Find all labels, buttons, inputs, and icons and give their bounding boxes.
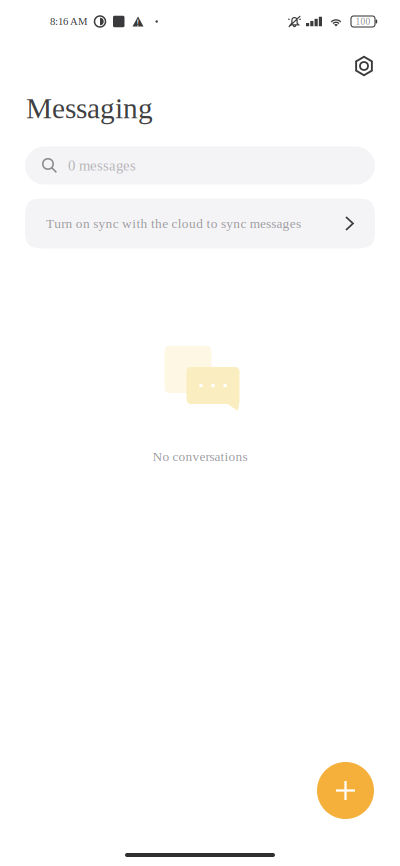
staticText: Turn on sync with the cloud to sync mess… — [46, 216, 301, 231]
staticText: No conversations — [152, 449, 247, 464]
staticText: 100 — [355, 16, 370, 27]
staticText: 0 messages — [68, 157, 136, 174]
button[interactable]: Turn on sync with the cloud to sync mess… — [25, 198, 375, 248]
button[interactable]: 0 messages — [25, 146, 375, 184]
button[interactable]: New conversation — [317, 762, 374, 819]
staticText: ! — [136, 17, 140, 29]
staticText: 8:16 AM — [50, 16, 87, 27]
button[interactable]: Settings — [343, 46, 385, 86]
staticText: Messaging — [26, 92, 153, 124]
